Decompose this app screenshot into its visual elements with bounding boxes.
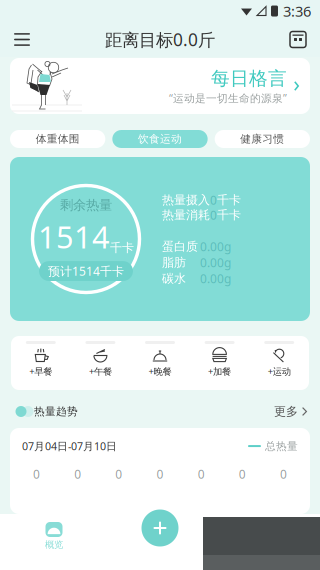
staticText: 0 [74, 466, 81, 482]
staticText: 0 [115, 466, 122, 482]
staticText: 1514 [38, 216, 110, 257]
staticText: 脂肪 [162, 255, 186, 270]
button[interactable]: +运动 [249, 336, 309, 390]
button[interactable]: Menu [0, 22, 44, 57]
staticText: 更多 [274, 404, 298, 419]
staticText: 3:36 [283, 1, 311, 21]
staticText: 0.00g [200, 238, 231, 254]
staticText: 健康习惯 [240, 132, 284, 145]
staticText: 千卡 [217, 208, 241, 222]
button[interactable]: 饮食运动 [112, 130, 208, 148]
button[interactable]: 概览 [24, 514, 84, 570]
staticText: +加餐 [208, 365, 231, 377]
staticText: 0.00g [200, 270, 231, 286]
staticText: 0 [198, 466, 205, 482]
staticText: 07月04日-07月10日 [22, 439, 117, 453]
staticText: +午餐 [89, 365, 112, 377]
staticText: 0 [33, 466, 40, 482]
staticText: 0 [156, 466, 163, 482]
button[interactable]: Add [137, 505, 183, 551]
staticText: 热量趋势 [34, 405, 78, 418]
staticText: 热量消耗 [162, 208, 210, 222]
button[interactable]: Calendar [276, 22, 320, 57]
staticText: 0 [210, 207, 217, 223]
staticText: 千卡 [110, 240, 134, 255]
button[interactable]: 每日格言 [0, 57, 320, 114]
staticText: 预计1514千卡 [48, 263, 124, 279]
staticText: 热量摄入 [162, 193, 210, 207]
staticText: +运动 [268, 365, 291, 377]
button[interactable]: +午餐 [71, 336, 130, 390]
staticText: +晚餐 [148, 365, 171, 377]
staticText: 蛋白质 [162, 239, 198, 254]
staticText: 距离目标0.0斤 [105, 28, 215, 51]
staticText: 概览 [45, 539, 63, 550]
staticText: 0 [210, 192, 217, 208]
staticText: 碳水 [162, 271, 186, 286]
staticText: “运动是一切生命的源泉” [169, 91, 287, 105]
button[interactable]: +加餐 [190, 336, 249, 390]
staticText: 剩余热量 [60, 197, 112, 213]
staticText: 0.00g [200, 254, 231, 270]
staticText: +早餐 [29, 365, 52, 377]
button[interactable]: 健康习惯 [215, 130, 310, 148]
staticText: 0 [280, 466, 287, 482]
button[interactable]: +早餐 [11, 336, 71, 390]
staticText: 总热量 [265, 439, 298, 453]
staticText: 0 [239, 466, 246, 482]
button[interactable]: 更多 [274, 398, 307, 425]
staticText: 每日格言 [211, 67, 287, 90]
button[interactable]: +晚餐 [130, 336, 190, 390]
button[interactable]: 体重体围 [10, 130, 105, 148]
staticText: 体重体围 [36, 132, 80, 145]
staticText: 饮食运动 [138, 132, 182, 145]
staticText: 千卡 [217, 193, 241, 207]
